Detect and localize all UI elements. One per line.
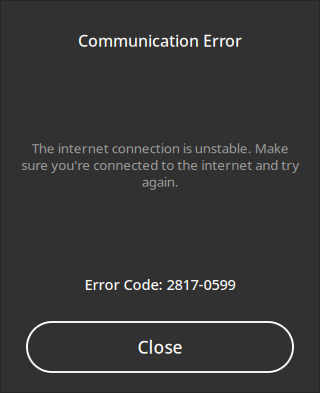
button[interactable]: Close [27, 322, 293, 372]
staticText: Communication Error [78, 30, 242, 51]
staticText: The internet connection is unstable. Mak… [21, 139, 299, 190]
staticText: Error Code: 2817-0599 [84, 274, 235, 294]
staticText: Close [137, 335, 182, 358]
